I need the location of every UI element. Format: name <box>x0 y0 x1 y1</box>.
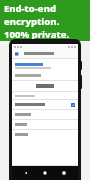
button[interactable]: App icon <box>15 52 19 56</box>
other: Selected <box>71 103 75 107</box>
button[interactable]: Recents <box>59 168 69 178</box>
button[interactable]: Home <box>40 168 50 178</box>
staticText: encryption. <box>4 15 60 28</box>
button[interactable] <box>12 110 78 119</box>
staticText: End-to-end <box>4 2 56 15</box>
button[interactable] <box>12 120 78 129</box>
staticText: 100% private. <box>4 28 70 41</box>
button[interactable]: App icon <box>12 49 78 58</box>
button[interactable]: Selected <box>12 100 78 109</box>
button[interactable]: Back <box>21 168 31 178</box>
button[interactable] <box>12 130 78 139</box>
